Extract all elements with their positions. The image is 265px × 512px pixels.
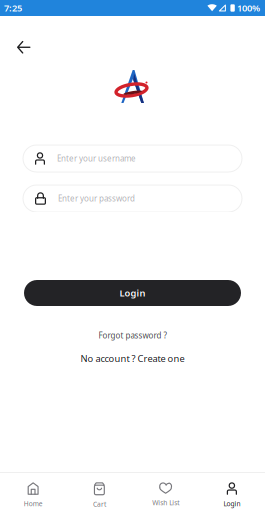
button[interactable]: Cart	[66, 473, 132, 512]
button[interactable]: Forgot password ?	[88, 306, 176, 346]
staticText: 7:25	[4, 2, 22, 14]
button[interactable]: Home	[0, 473, 66, 512]
staticText: No account ? Create one	[80, 352, 184, 364]
staticText: Login	[119, 287, 145, 299]
button[interactable]: Back	[0, 16, 41, 63]
button[interactable]: Login	[24, 280, 241, 306]
staticText: Enter your username	[57, 153, 136, 164]
staticText: Wish List	[152, 498, 179, 507]
button[interactable]: No account ? Create one	[70, 346, 194, 369]
button[interactable]: Login	[199, 473, 265, 512]
button[interactable]: Wish List	[132, 473, 199, 512]
staticText: Login	[223, 499, 240, 508]
staticText: 100%	[237, 2, 260, 14]
staticText: Home	[24, 499, 43, 508]
staticText: Forgot password ?	[98, 330, 166, 341]
staticText: Cart	[93, 500, 106, 509]
staticText: Enter your password	[58, 193, 135, 204]
